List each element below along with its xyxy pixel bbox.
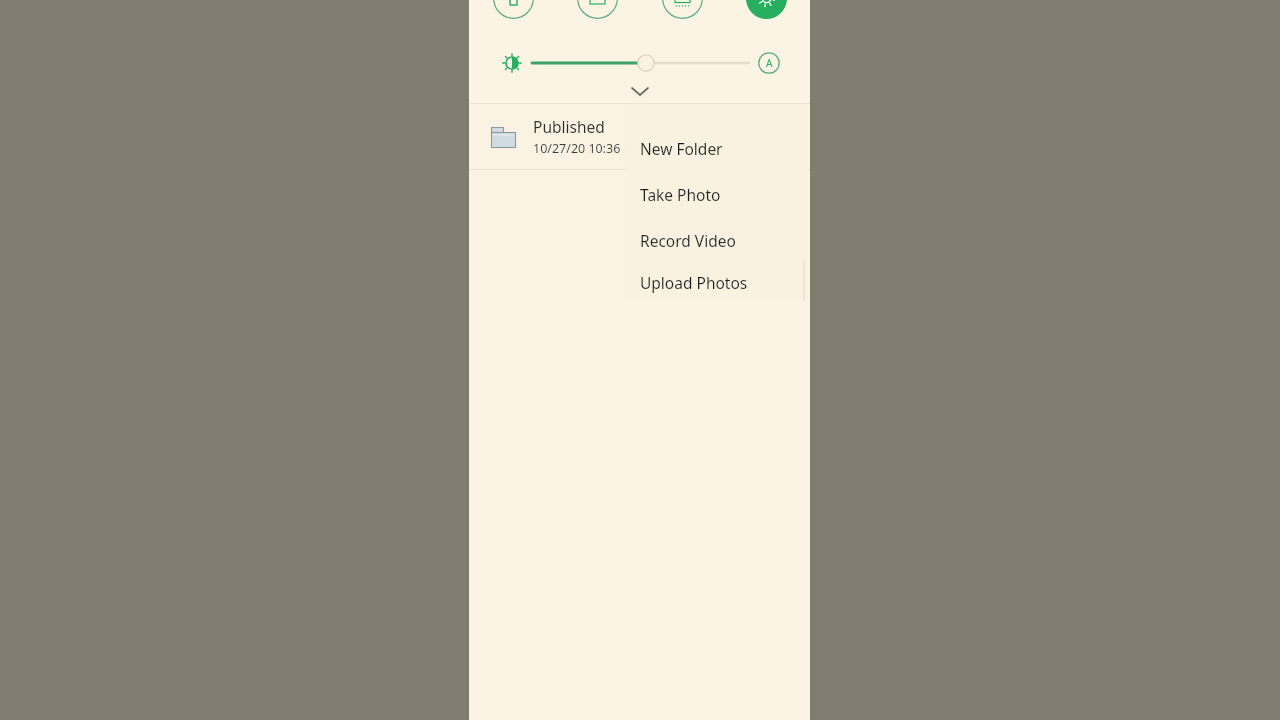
staticText: Published — [533, 116, 605, 137]
button[interactable]: Take Photo — [625, 171, 808, 217]
button[interactable]: Night Shield — [726, 0, 806, 45]
staticText: Record Video — [640, 230, 736, 251]
staticText: A — [766, 56, 773, 70]
staticText: Upload Photos — [640, 272, 748, 293]
button[interactable]: Published — [469, 104, 810, 169]
staticText: 10/27/20 10:36 PM — [533, 140, 643, 157]
button[interactable]: Flashlight — [473, 0, 553, 45]
button[interactable]: Brightness slider — [532, 51, 749, 75]
button[interactable]: New Folder — [625, 125, 808, 171]
button[interactable]: Upload Photos — [625, 263, 808, 301]
staticText: New Folder — [640, 138, 723, 159]
button[interactable]: Auto brightness — [758, 52, 780, 74]
button[interactable]: Calculator — [557, 0, 637, 45]
staticText: Take Photo — [640, 184, 721, 205]
button[interactable]: Brightness — [499, 50, 525, 76]
button[interactable]: Record Video — [625, 217, 808, 263]
button[interactable]: Clean Storage — [642, 0, 722, 45]
button[interactable]: Expand quick settings — [469, 80, 810, 102]
